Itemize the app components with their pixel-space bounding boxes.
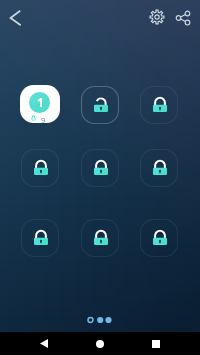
button[interactable]: Locked level: [81, 149, 119, 187]
button[interactable]: Locked level: [81, 219, 119, 257]
staticText: 9: [41, 115, 46, 123]
button[interactable]: Locked level: [140, 219, 178, 257]
button[interactable]: Back: [30, 332, 58, 355]
button[interactable]: Locked level: [21, 149, 59, 187]
button[interactable]: Locked level: [21, 219, 59, 257]
button[interactable]: Settings: [142, 2, 172, 32]
button[interactable]: Locked level: [140, 149, 178, 187]
button[interactable]: Home: [86, 332, 114, 355]
button[interactable]: Share: [168, 3, 198, 33]
button[interactable]: 1: [20, 85, 60, 123]
button[interactable]: Back: [0, 3, 30, 33]
staticText: 1: [37, 95, 44, 111]
button[interactable]: Unlocked level: [81, 86, 119, 124]
button[interactable]: Locked level: [140, 86, 178, 124]
button[interactable]: Recent apps: [142, 332, 170, 355]
